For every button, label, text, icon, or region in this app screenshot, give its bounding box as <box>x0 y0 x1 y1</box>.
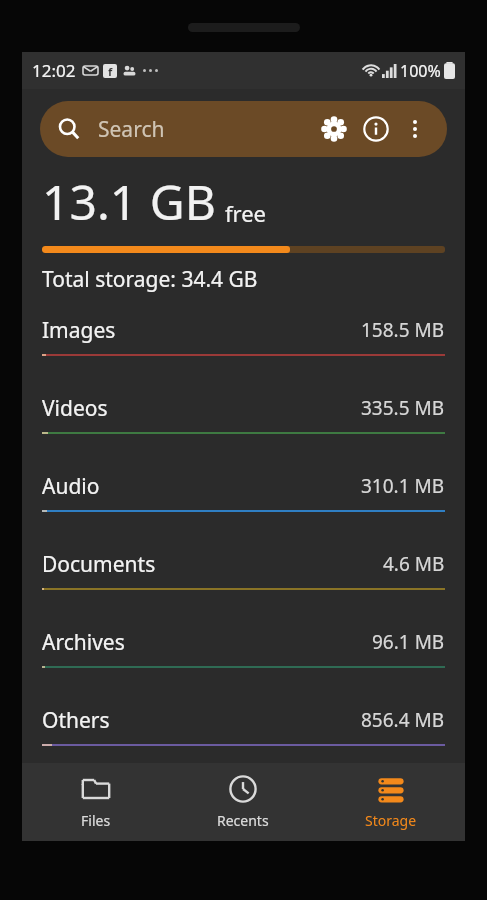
staticText: 12:02 <box>32 59 76 82</box>
button[interactable]: More options <box>401 115 429 143</box>
staticText: 158.5 MB <box>361 317 445 343</box>
staticText: Archives <box>42 628 125 657</box>
staticText: Images <box>42 316 116 345</box>
staticText: f <box>108 64 113 78</box>
staticText: Recents <box>217 811 269 830</box>
button[interactable]: Archives <box>22 618 465 696</box>
button[interactable]: Info <box>361 114 391 144</box>
button[interactable]: Search <box>40 101 447 157</box>
staticText: 310.1 MB <box>361 473 445 499</box>
staticText: Storage <box>365 811 417 830</box>
button[interactable]: Others <box>22 696 465 774</box>
staticText: 4.6 MB <box>383 551 445 577</box>
staticText: 100% <box>400 60 441 82</box>
staticText: Videos <box>42 394 108 423</box>
staticText: free <box>225 198 267 228</box>
staticText: 96.1 MB <box>372 629 445 655</box>
staticText: 335.5 MB <box>361 395 445 421</box>
staticText: Documents <box>42 550 156 579</box>
button[interactable]: Recents <box>169 763 317 841</box>
button[interactable]: Images <box>22 306 465 384</box>
button[interactable]: Files <box>22 763 169 841</box>
staticText: 856.4 MB <box>361 707 445 733</box>
button[interactable]: Documents <box>22 540 465 618</box>
button[interactable]: Videos <box>22 384 465 462</box>
other: Search <box>58 118 80 140</box>
button[interactable]: Audio <box>22 462 465 540</box>
staticText: Total storage: 34.4 GB <box>42 265 258 294</box>
staticText: Others <box>42 706 110 735</box>
button[interactable]: Storage <box>317 763 465 841</box>
staticText: Audio <box>42 472 100 501</box>
staticText: 13.1 GB <box>42 169 216 234</box>
button[interactable]: Settings <box>319 114 349 144</box>
staticText: Files <box>81 811 111 830</box>
staticText: Search <box>98 115 165 144</box>
